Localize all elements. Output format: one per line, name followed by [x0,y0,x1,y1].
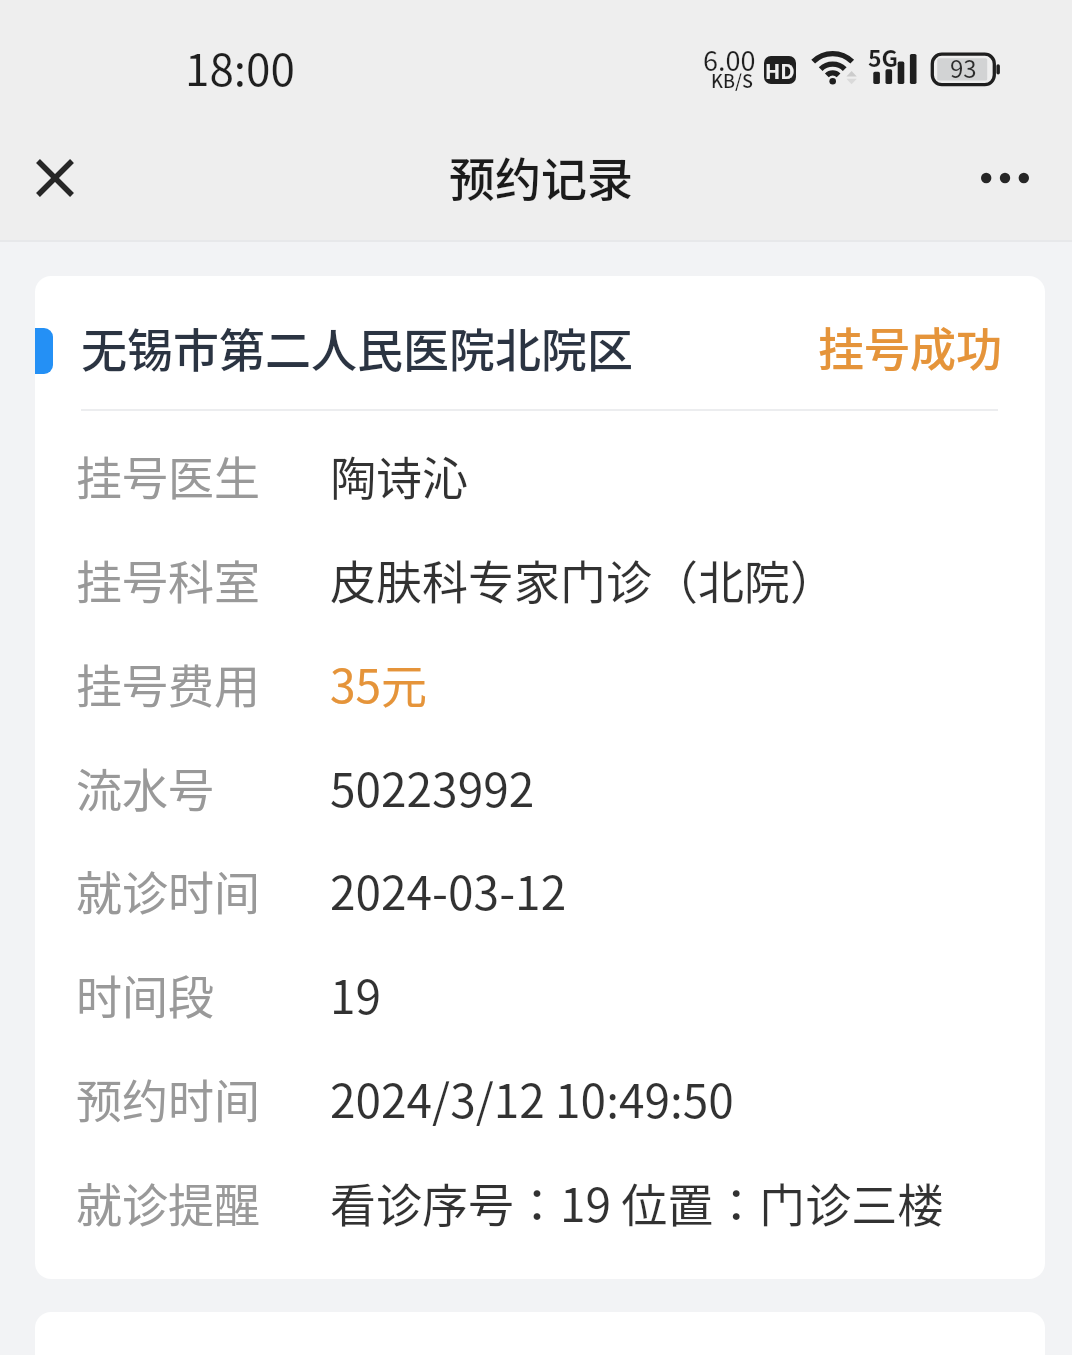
staticText: KB/S [711,67,753,93]
staticText: 18:00 [185,35,295,99]
staticText: 陶诗沁 [330,442,468,509]
staticText: 挂号费用 [76,650,260,717]
staticText: 预约记录 [5,143,1072,210]
staticText: 挂号成功 [818,313,1002,380]
staticText: 35元 [330,650,428,717]
staticText: 挂号科室 [76,546,260,613]
staticText: 5G [868,40,899,73]
staticText: 挂号医生 [76,442,260,509]
button[interactable]: Close [20,143,90,213]
staticText: HD [765,56,795,84]
staticText: 2024/3/12 10:49:50 [330,1065,734,1132]
staticText: 皮肤科专家门诊（北院） [330,546,836,613]
staticText: 流水号 [76,754,214,821]
button[interactable] [35,276,1045,1279]
staticText: 就诊时间 [76,857,260,924]
staticText: 93 [950,50,977,85]
staticText: 就诊提醒 [76,1169,260,1236]
staticText: 19 [330,961,382,1028]
staticText: 6.00 [703,40,756,79]
staticText: 2024-03-12 [330,857,567,924]
staticText: 看诊序号：19 位置：门诊三楼 [330,1169,944,1236]
staticText: 时间段 [76,961,214,1028]
staticText: 无锡市第二人民医院北院区 [81,314,633,381]
staticText: 预约时间 [76,1065,260,1132]
button[interactable]: More options [958,143,1052,213]
staticText: 50223992 [330,754,535,821]
